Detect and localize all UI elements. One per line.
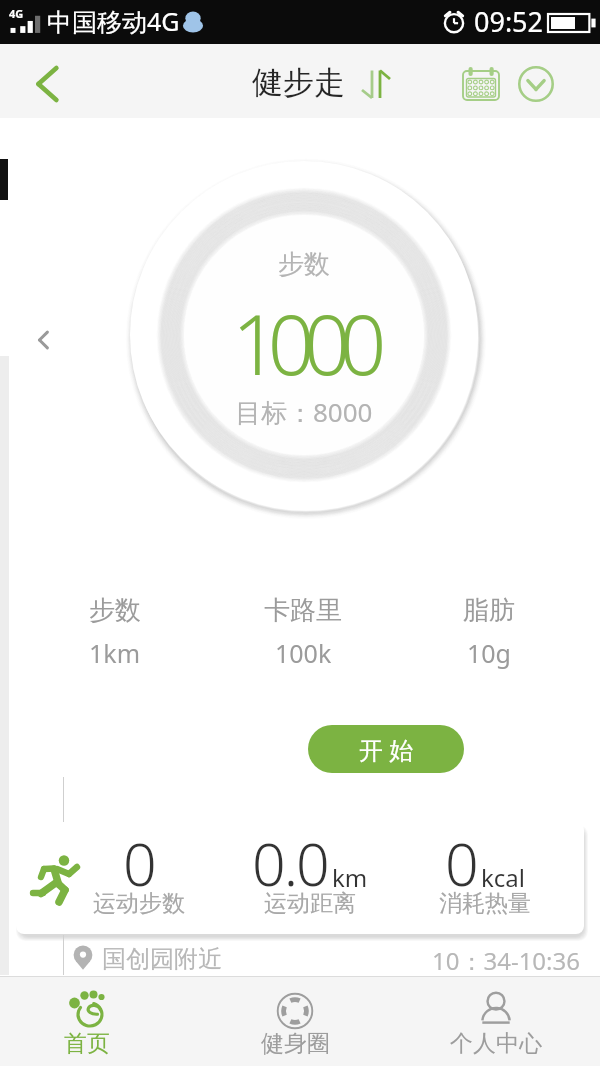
staticText: 0 (123, 823, 155, 903)
staticText: 步数 (89, 594, 141, 627)
button[interactable]: 健身圈 (235, 977, 355, 1066)
staticText: 消耗热量 (439, 889, 531, 918)
button[interactable]: 首页 (27, 977, 147, 1066)
staticText: 健步走 (252, 63, 345, 102)
staticText: 步数 (278, 248, 330, 281)
button[interactable]: Back (11, 46, 89, 120)
button[interactable]: 个人中心 (436, 977, 556, 1066)
button[interactable]: 国创园附近 (0, 935, 600, 987)
staticText: 脂肪 (463, 594, 515, 627)
button[interactable]: 步数 (55, 594, 175, 670)
staticText: kcal (481, 861, 525, 894)
staticText: 卡路里 (264, 594, 342, 627)
button[interactable]: 卡路里 (243, 594, 363, 670)
staticText: 4G (9, 6, 24, 21)
button[interactable]: 脂肪 (429, 594, 549, 670)
staticText: 运动步数 (93, 889, 185, 918)
staticText: 100k (275, 636, 332, 670)
staticText: 健身圈 (261, 1029, 330, 1058)
staticText: 10：34-10:36 (432, 944, 580, 977)
staticText: 09:52 (474, 3, 544, 40)
staticText: 中国移动4G (47, 4, 180, 38)
staticText: 运动距离 (264, 889, 356, 918)
staticText: 首页 (64, 1029, 110, 1058)
button[interactable]: 0 (16, 822, 584, 934)
staticText: 0.0 (252, 823, 328, 903)
button[interactable]: 开 始 (308, 725, 464, 773)
staticText: 目标：8000 (235, 394, 373, 430)
staticText: 个人中心 (450, 1029, 542, 1058)
staticText: 开 始 (359, 733, 414, 766)
staticText: 0 (445, 823, 477, 903)
staticText: km (332, 861, 368, 894)
staticText: 10g (467, 636, 511, 670)
button[interactable]: Expand (506, 47, 566, 121)
staticText: 国创园附近 (102, 944, 222, 974)
staticText: 1km (89, 636, 141, 670)
staticText: 1000 (232, 287, 376, 399)
button[interactable]: Calendar (453, 47, 509, 121)
